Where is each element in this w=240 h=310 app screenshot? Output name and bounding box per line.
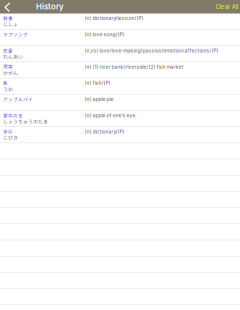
staticText: アップルパイ	[3, 97, 33, 102]
staticText: じしょ	[3, 22, 18, 27]
staticText: (n) apple of one's eye	[85, 113, 136, 118]
button[interactable]: Back	[0, 0, 16, 13]
staticText: (n,vs) love/love-making/passion/emotion/…	[85, 48, 219, 53]
button[interactable]: アップルパイ	[0, 94, 240, 111]
staticText: (n) dictionary/lexicon/(P)	[85, 16, 144, 21]
staticText: うお	[3, 86, 13, 91]
staticText: History	[36, 2, 64, 11]
staticText: Clear All	[216, 3, 238, 10]
staticText: 掌中の玉	[3, 113, 23, 118]
staticText: 字引	[3, 129, 13, 134]
staticText: (n) fish/(P)	[85, 80, 111, 86]
button[interactable]: 河岸	[0, 62, 240, 78]
staticText: 魚	[3, 80, 8, 86]
staticText: れんあい	[3, 54, 23, 59]
staticText: 辞書	[3, 16, 13, 21]
staticText: かがん	[3, 70, 18, 75]
button[interactable]: 掌中の玉	[0, 111, 240, 127]
staticText: (n) love song/(P)	[85, 32, 125, 37]
staticText: 恋愛	[3, 48, 13, 53]
staticText: ラブソング	[3, 32, 28, 37]
staticText: (n) dictionary/(P)	[85, 129, 125, 134]
button[interactable]: 字引	[0, 127, 240, 143]
staticText: しょうちゅうのたま	[3, 119, 48, 124]
staticText: (n) apple pie	[85, 97, 114, 102]
button[interactable]: ラブソング	[0, 30, 240, 46]
button[interactable]: Clear All	[216, 3, 240, 10]
button[interactable]: 辞書	[0, 13, 240, 30]
staticText: 河岸	[3, 64, 13, 69]
staticText: じびき	[3, 135, 18, 140]
button[interactable]: 恋愛	[0, 46, 240, 62]
staticText: (n) (1) river bank/riverside/(2) fish ma…	[85, 64, 184, 69]
button[interactable]: 魚	[0, 78, 240, 94]
